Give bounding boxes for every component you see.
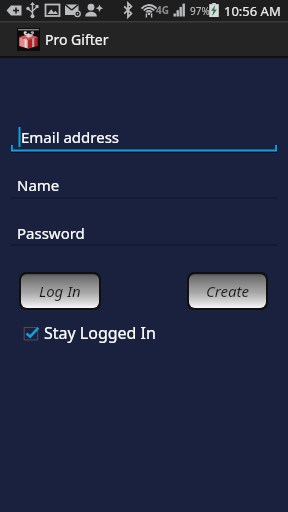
staticText: Email address bbox=[21, 127, 120, 147]
staticText: Name bbox=[17, 175, 60, 195]
button[interactable]: Email address bbox=[11, 124, 277, 153]
button[interactable]: Stay Logged In bbox=[23, 322, 156, 343]
staticText: Stay Logged In bbox=[44, 322, 156, 343]
other: Pro Gifter app icon bbox=[17, 28, 40, 51]
button[interactable]: Name bbox=[11, 172, 277, 199]
staticText: Password bbox=[17, 223, 85, 243]
staticText: 4G bbox=[156, 3, 169, 17]
staticText: 10:56 AM bbox=[224, 2, 281, 20]
button[interactable]: Create bbox=[189, 274, 266, 308]
button[interactable]: Pro Gifter app icon bbox=[0, 21, 288, 58]
staticText: 97% bbox=[190, 4, 210, 18]
button[interactable]: Password bbox=[11, 220, 277, 247]
button[interactable]: Log In bbox=[21, 274, 99, 308]
staticText: Log In bbox=[39, 281, 81, 301]
staticText: Create bbox=[206, 281, 249, 301]
staticText: Pro Gifter bbox=[45, 30, 109, 49]
